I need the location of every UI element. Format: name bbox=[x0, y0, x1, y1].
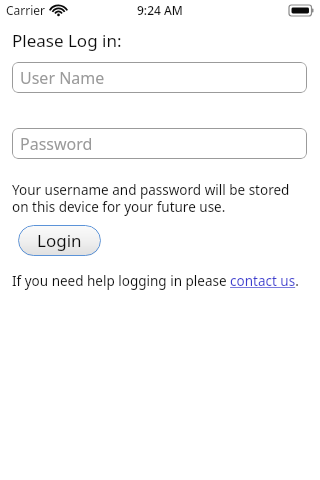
staticText: 9:24 AM bbox=[137, 2, 183, 18]
staticText: User Name bbox=[20, 67, 105, 89]
other: Battery full bbox=[289, 5, 314, 16]
staticText: Login bbox=[37, 229, 82, 252]
button[interactable]: Password bbox=[12, 128, 307, 159]
staticText: Please Log in: bbox=[12, 29, 122, 52]
button[interactable]: User Name bbox=[12, 62, 307, 93]
button[interactable]: Login bbox=[18, 225, 101, 256]
other: Wi-Fi signal bbox=[51, 5, 66, 16]
staticText: If you need help logging in please conta… bbox=[12, 272, 299, 290]
button[interactable]: If you need help logging in please conta… bbox=[12, 272, 299, 290]
staticText: Carrier bbox=[6, 2, 46, 18]
staticText: Password bbox=[20, 133, 93, 155]
staticText: Your username and password will be store… bbox=[12, 181, 306, 216]
